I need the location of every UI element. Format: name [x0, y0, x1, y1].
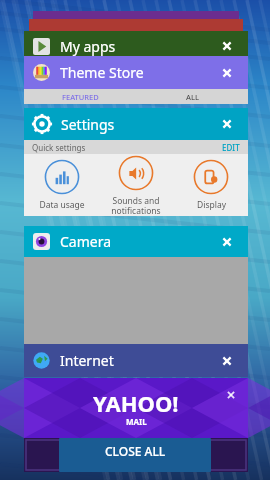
staticText: CLOSE ALL [105, 443, 166, 459]
button[interactable]: Close Camera [214, 229, 240, 255]
staticText: Internet [60, 351, 214, 370]
staticText: YAHOO! [93, 388, 179, 418]
button[interactable]: CLOSE ALL [59, 438, 211, 472]
staticText: Quick settings [32, 142, 222, 153]
staticText: Theme Store [60, 63, 214, 82]
button[interactable]: Close Internet [214, 348, 240, 374]
button[interactable]: My apps [24, 31, 248, 61]
button[interactable]: Internet [24, 344, 248, 377]
staticText: FEATURED [62, 92, 99, 102]
button[interactable]: Theme Store [24, 56, 248, 89]
button[interactable]: Display [174, 159, 248, 211]
staticText: Display [197, 199, 226, 211]
button[interactable]: YAHOO! [24, 378, 248, 438]
button[interactable]: ALL [136, 89, 248, 104]
staticText: MAIL [126, 416, 147, 427]
button[interactable]: Close ad [220, 384, 242, 406]
button[interactable]: Close Settings [214, 111, 240, 137]
staticText: My apps [60, 37, 214, 56]
button[interactable]: EDIT [222, 142, 240, 153]
button[interactable]: Settings [24, 108, 248, 140]
staticText: Sounds and notifications [111, 195, 161, 216]
staticText: EDIT [222, 142, 240, 153]
staticText: ALL [186, 92, 199, 102]
button[interactable]: Close My apps [214, 33, 240, 59]
button[interactable]: Camera [24, 226, 248, 257]
staticText: Camera [60, 232, 214, 251]
button[interactable]: FEATURED [24, 89, 136, 104]
button[interactable]: Tap to install [24, 438, 248, 472]
staticText: Tap to install [103, 453, 169, 468]
button[interactable]: Data usage [25, 159, 99, 211]
staticText: Settings [61, 115, 214, 134]
staticText: Data usage [39, 199, 85, 211]
button[interactable]: Close Theme Store [214, 60, 240, 86]
button[interactable]: Sounds and notifications [99, 155, 173, 216]
